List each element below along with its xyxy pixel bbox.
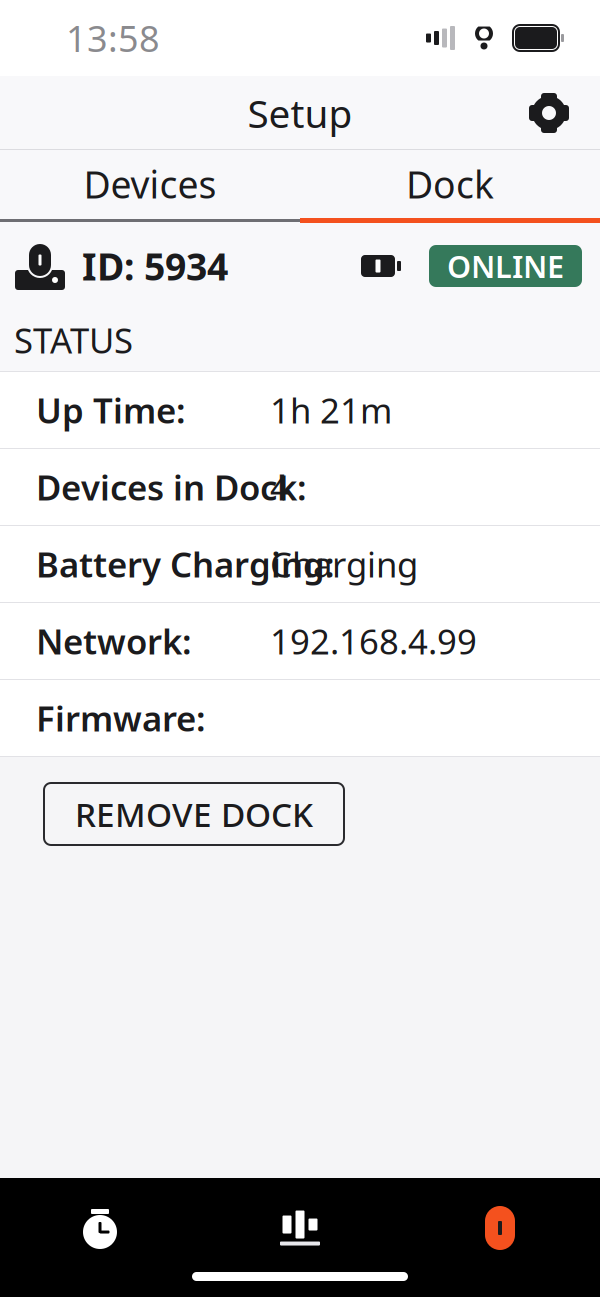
button[interactable]: Dock [300,150,600,218]
staticText: Devices [83,159,216,209]
staticText: Battery Charging: [36,541,335,587]
staticText: 1h 21m [270,387,392,433]
staticText: Network: [36,618,192,664]
button[interactable]: ONLINE [429,245,582,287]
button[interactable]: Devices [400,1192,600,1264]
staticText: Firmware: [36,695,206,741]
staticText: ID: 5934 [82,241,228,291]
staticText: REMOVE DOCK [75,792,313,836]
staticText: 192.168.4.99 [270,618,477,664]
staticText: 13:58 [66,14,160,62]
button[interactable]: Devices [0,150,300,218]
button[interactable]: REMOVE DOCK [44,783,344,845]
button[interactable]: Settings [514,78,584,148]
staticText: 4 [270,464,290,510]
button[interactable]: Statistics [200,1192,400,1264]
staticText: Up Time: [36,387,186,433]
staticText: Dock [406,159,494,209]
button[interactable]: Timer [0,1192,200,1264]
staticText: Charging [270,541,418,587]
staticText: Setup [247,87,352,139]
staticText: STATUS [14,317,133,363]
staticText: ONLINE [447,246,564,286]
staticText: Devices in Dock: [36,464,307,510]
